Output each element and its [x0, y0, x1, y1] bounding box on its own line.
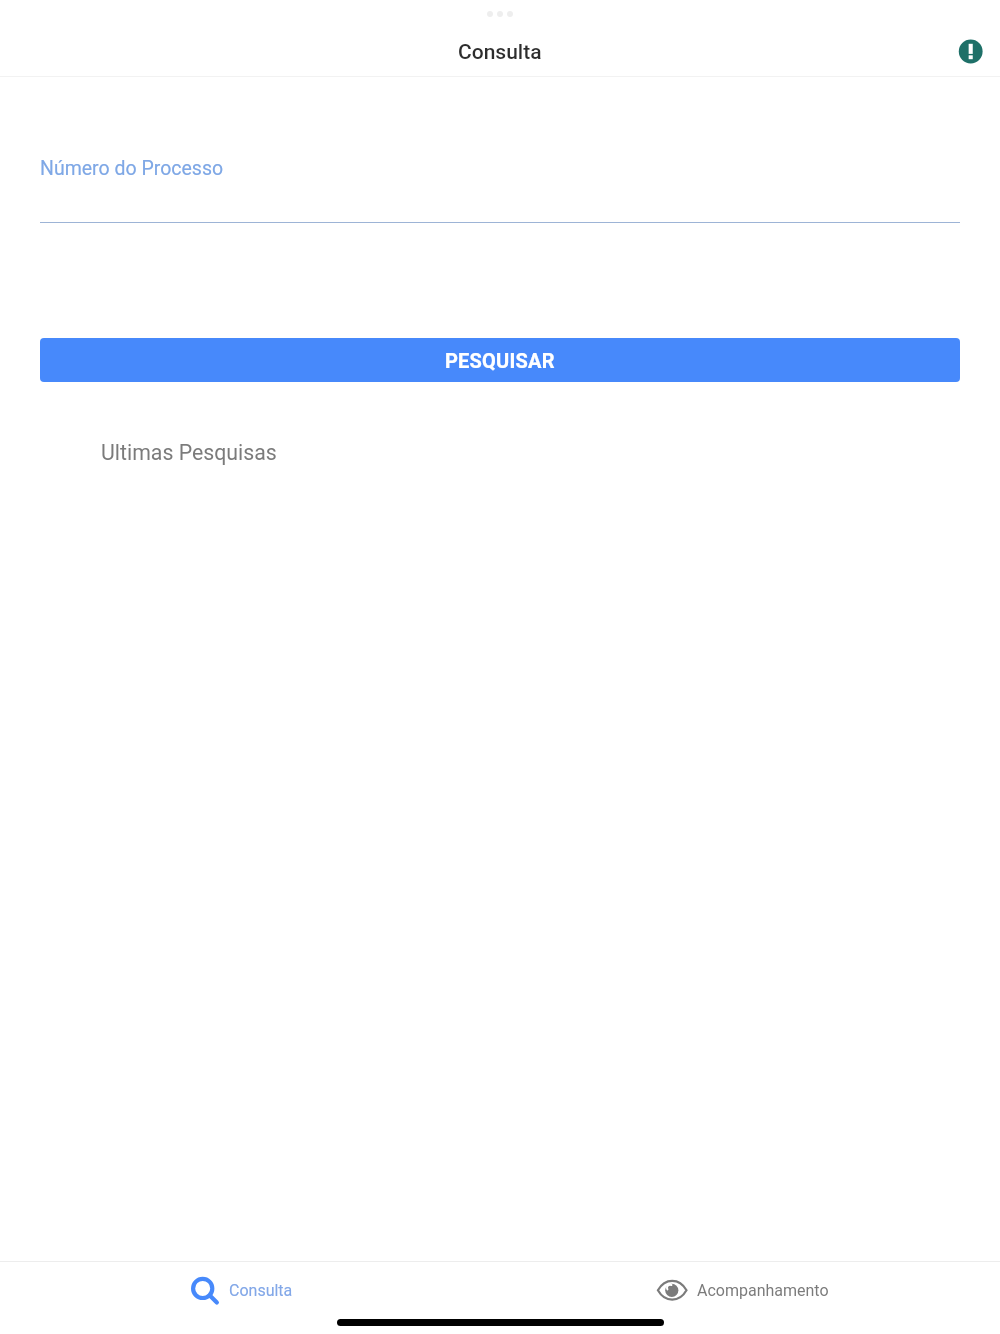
button[interactable]: Informações: [951, 32, 991, 72]
staticText: Acompanhamento: [697, 1281, 829, 1300]
staticText: Ultimas Pesquisas: [101, 440, 277, 465]
staticText: Número do Processo: [40, 157, 224, 180]
staticText: Consulta: [229, 1281, 293, 1300]
button[interactable]: PESQUISAR: [40, 338, 960, 382]
staticText: PESQUISAR: [445, 349, 555, 372]
button[interactable]: Consulta: [191, 1262, 311, 1318]
button[interactable]: Acompanhamento: [656, 1262, 846, 1318]
button[interactable]: Número do Processo: [40, 150, 960, 223]
staticText: Consulta: [458, 40, 542, 65]
